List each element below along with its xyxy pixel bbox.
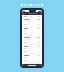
button[interactable]: [23, 45, 41, 53]
button[interactable]: [23, 54, 41, 62]
button[interactable]: [23, 36, 41, 44]
button[interactable]: Menu: [22, 12, 42, 15]
button[interactable]: [23, 27, 41, 35]
button[interactable]: [23, 18, 41, 26]
